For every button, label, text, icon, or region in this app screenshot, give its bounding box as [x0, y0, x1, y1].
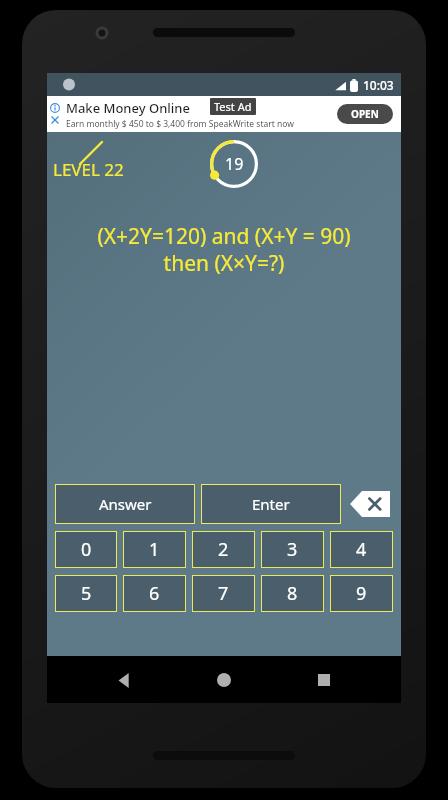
staticText: 19	[225, 153, 244, 175]
button[interactable]: 1	[123, 531, 186, 568]
staticText: 6	[149, 581, 160, 606]
staticText: 10:03	[363, 77, 394, 93]
button[interactable]: 3	[261, 531, 324, 568]
button[interactable]: 7	[192, 575, 255, 612]
staticText: 2	[218, 537, 229, 562]
staticText: OPEN	[351, 107, 379, 121]
button[interactable]: Recents	[301, 657, 347, 703]
staticText: (X+2Y=120) and (X+Y = 90) then (X×Y=?)	[57, 222, 391, 277]
button[interactable]: LEVEL 22	[53, 158, 124, 181]
button[interactable]: 8	[261, 575, 324, 612]
staticText: 3	[287, 537, 298, 562]
button[interactable]: Answer	[55, 484, 195, 524]
staticText: 0	[81, 537, 92, 562]
button[interactable]: Enter	[201, 484, 341, 524]
button[interactable]: OPEN	[337, 104, 393, 124]
staticText: 9	[356, 581, 367, 606]
button[interactable]: 2	[192, 531, 255, 568]
staticText: 4	[356, 537, 367, 562]
staticText: Answer	[99, 494, 152, 514]
staticText: 8	[287, 581, 298, 606]
button[interactable]: Home	[201, 657, 247, 703]
button[interactable]: 5	[55, 575, 117, 612]
button[interactable]: Backspace	[347, 484, 393, 524]
staticText: 5	[81, 581, 92, 606]
staticText: Make Money Online	[66, 99, 190, 117]
staticText: Test Ad	[214, 99, 252, 114]
button[interactable]: 6	[123, 575, 186, 612]
button[interactable]: 9	[330, 575, 393, 612]
staticText: 1	[149, 537, 160, 562]
button[interactable]: 0	[55, 531, 117, 568]
button[interactable]: 4	[330, 531, 393, 568]
staticText: 7	[218, 581, 229, 606]
staticText: Enter	[252, 494, 290, 514]
button[interactable]: Back	[101, 657, 147, 703]
staticText: Earn monthly $ 450 to $ 3,400 from Speak…	[66, 118, 294, 130]
